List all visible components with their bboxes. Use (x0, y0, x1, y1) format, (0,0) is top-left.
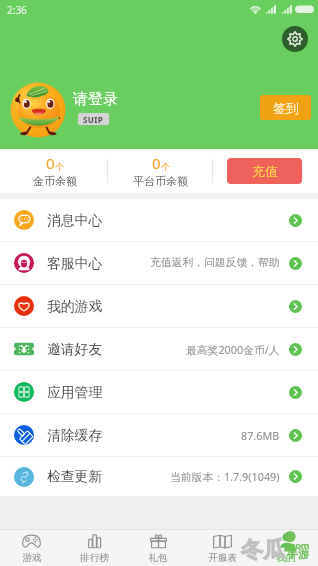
button[interactable]: 清除缓存 (0, 414, 318, 456)
button[interactable]: 客服中心 (0, 242, 318, 284)
staticText: 最高奖2000金币/人 (186, 342, 280, 357)
staticText: 0 (152, 153, 161, 173)
button[interactable]: 游戏 (0, 530, 63, 566)
staticText: 平台币余额 (133, 174, 188, 188)
staticText: 排行榜 (80, 552, 109, 564)
button[interactable]: 我的游戏 (0, 285, 318, 327)
staticText: 礼包 (148, 552, 168, 564)
button[interactable]: 0 (10, 153, 100, 188)
staticText: 游戏 (22, 552, 42, 564)
button[interactable]: 检查更新 (0, 457, 318, 496)
button[interactable]: 请登录 (73, 90, 118, 109)
staticText: SUIP (83, 114, 104, 125)
staticText: .com (288, 539, 310, 551)
staticText: 87.6MB (241, 428, 280, 443)
staticText: 2:36 (7, 3, 27, 17)
staticText: 我的游戏 (47, 298, 103, 315)
button[interactable]: 应用管理 (0, 371, 318, 413)
staticText: 应用管理 (47, 384, 103, 401)
staticText: 清除缓存 (47, 427, 103, 444)
button[interactable]: 签到 (260, 95, 311, 120)
button[interactable]: 消息中心 (0, 199, 318, 241)
staticText: 0 (46, 153, 55, 173)
button[interactable]: 邀请好友 (0, 328, 318, 370)
button[interactable]: 礼包 (126, 530, 190, 566)
button[interactable]: 0 (115, 153, 205, 188)
button[interactable]: Settings (282, 26, 308, 52)
staticText: 当前版本：1.7.9(1049) (170, 469, 280, 484)
staticText: 客服中心 (47, 255, 103, 272)
staticText: 充值 (252, 163, 278, 179)
staticText: 金币余额 (33, 174, 77, 188)
staticText: 个 (161, 161, 170, 172)
button[interactable]: Avatar (10, 82, 65, 137)
staticText: 充值返利，问题反馈，帮助 (150, 256, 280, 270)
staticText: 检查更新 (47, 468, 103, 485)
staticText: 个 (55, 161, 64, 172)
staticText: 签到 (273, 100, 299, 116)
staticText: 冬瓜 (241, 536, 285, 564)
button[interactable]: 我的 (254, 530, 318, 566)
staticText: 消息中心 (47, 212, 103, 229)
staticText: 我的 (276, 552, 296, 564)
staticText: 开服表 (208, 552, 237, 564)
button[interactable]: 充值 (227, 158, 302, 184)
button[interactable]: 开服表 (190, 530, 254, 566)
button[interactable]: 排行榜 (63, 530, 126, 566)
staticText: 邀请好友 (47, 341, 103, 358)
staticText: 手游 (287, 547, 309, 561)
